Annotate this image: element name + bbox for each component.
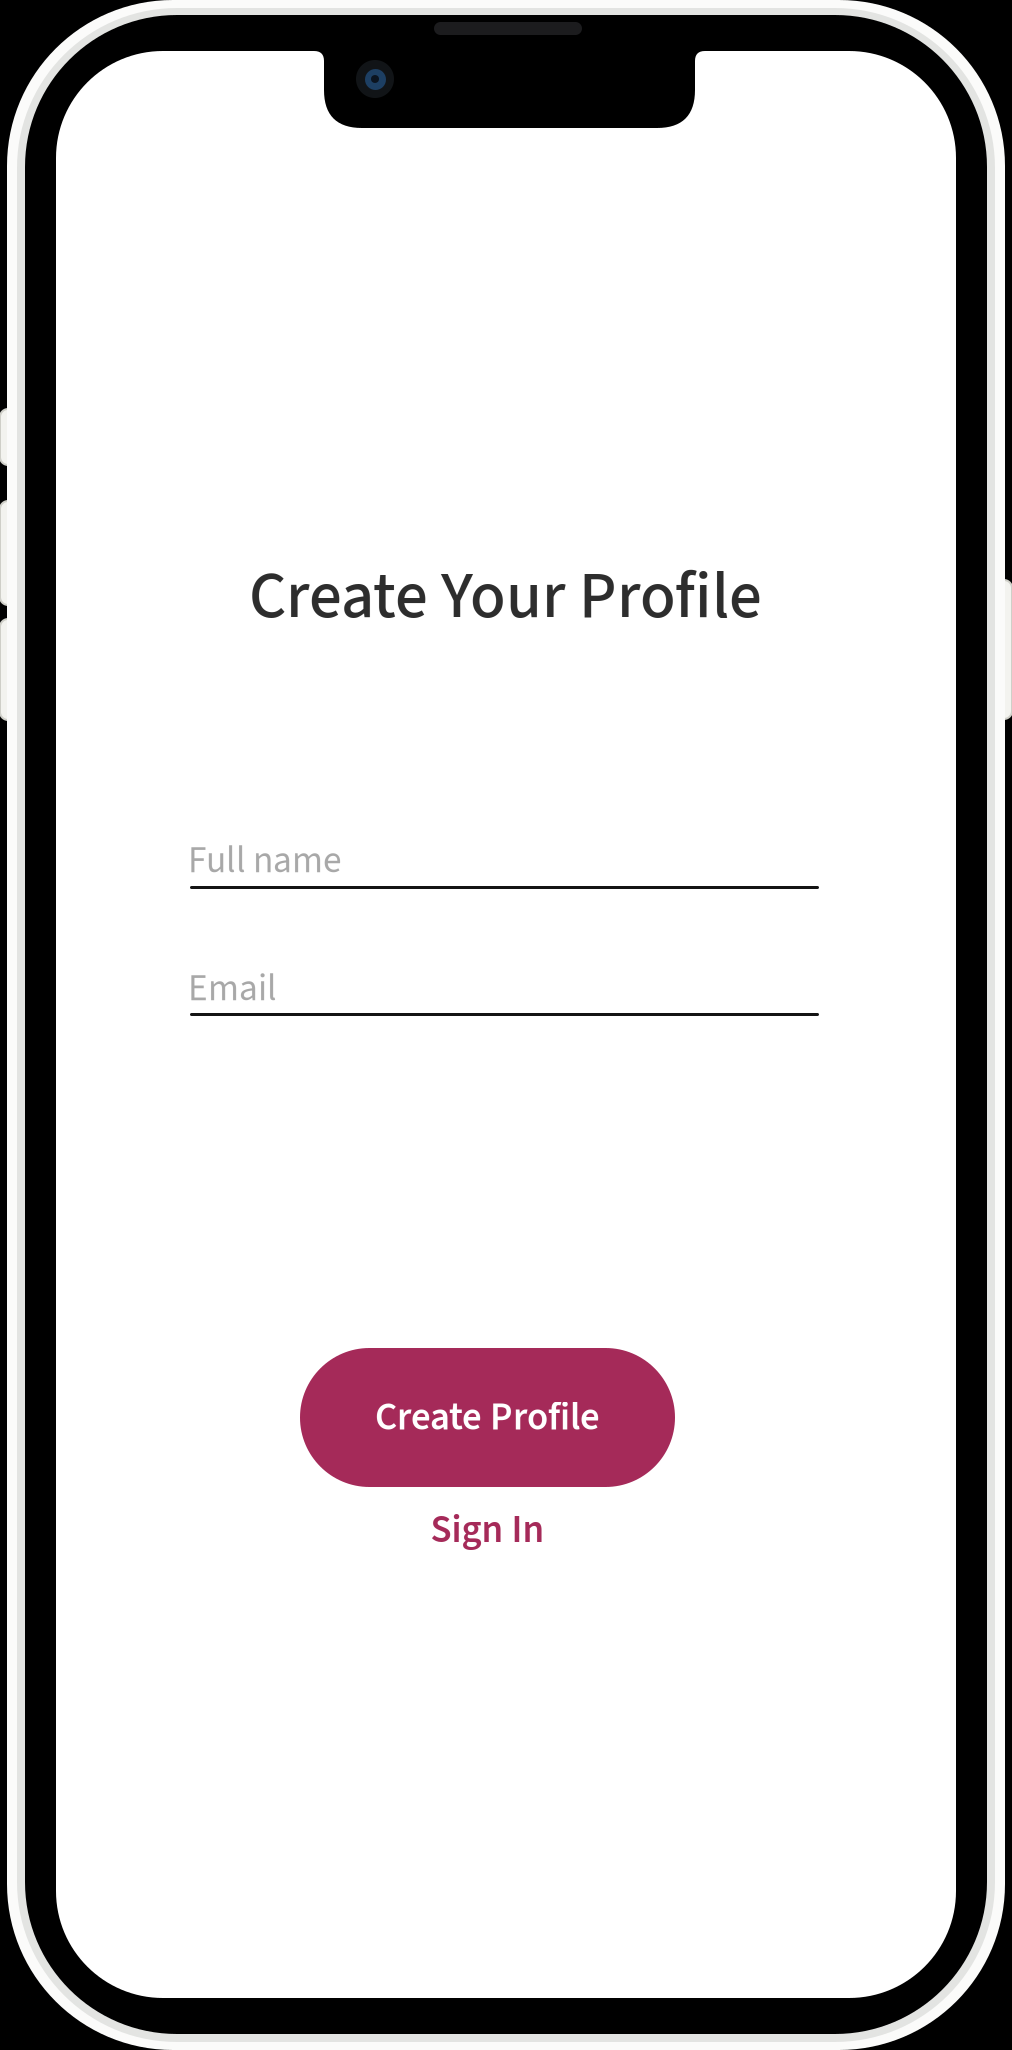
staticText: Full name [188, 834, 342, 887]
button[interactable]: Create Profile [300, 1348, 675, 1487]
button[interactable]: Sign In [300, 1502, 675, 1558]
staticText: Create Your Profile [249, 550, 762, 643]
staticText: Sign In [430, 1502, 544, 1558]
staticText: Email [188, 962, 277, 1015]
staticText: Create Profile [375, 1390, 600, 1445]
